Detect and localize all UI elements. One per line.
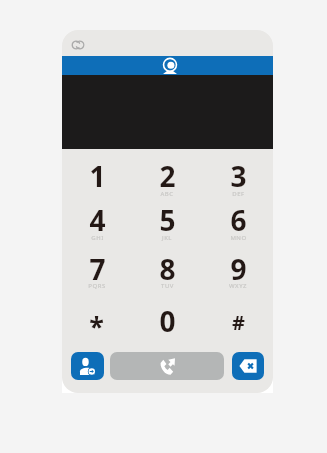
- staticText: JKL: [162, 234, 172, 242]
- staticText: 4: [89, 201, 106, 235]
- button[interactable]: [203, 186, 273, 234]
- button[interactable]: [203, 235, 273, 288]
- button[interactable]: [62, 287, 132, 348]
- button[interactable]: [203, 149, 273, 186]
- staticText: MNO: [230, 234, 247, 242]
- staticText: WXYZ: [229, 282, 247, 290]
- staticText: #: [232, 309, 245, 336]
- staticText: 7: [89, 250, 106, 284]
- button[interactable]: [203, 287, 273, 348]
- button[interactable]: [132, 149, 202, 186]
- button[interactable]: Call: [110, 352, 224, 380]
- staticText: 1: [89, 157, 106, 191]
- staticText: TUV: [161, 282, 174, 290]
- staticText: GHI: [91, 234, 104, 242]
- staticText: 6: [230, 201, 247, 235]
- staticText: 0: [159, 302, 176, 336]
- staticText: ABC: [160, 190, 174, 198]
- staticText: 5: [159, 201, 176, 235]
- button[interactable]: [62, 235, 132, 288]
- button[interactable]: Connection: [72, 41, 84, 49]
- staticText: DEF: [232, 190, 245, 198]
- button[interactable]: [132, 235, 202, 288]
- button[interactable]: [132, 186, 202, 234]
- staticText: PQRS: [88, 282, 106, 290]
- staticText: 9: [230, 250, 247, 284]
- button[interactable]: [132, 287, 202, 348]
- button[interactable]: [62, 149, 132, 186]
- staticText: *: [89, 308, 104, 342]
- staticText: 2: [159, 157, 176, 191]
- button[interactable]: Add contact: [71, 352, 104, 380]
- button[interactable]: Backspace: [232, 352, 264, 380]
- staticText: 3: [230, 157, 247, 191]
- button[interactable]: [62, 186, 132, 234]
- staticText: 8: [159, 250, 176, 284]
